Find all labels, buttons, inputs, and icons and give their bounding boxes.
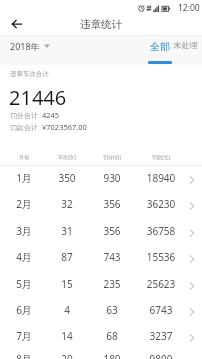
staticText: 罚款合计 [10, 123, 38, 132]
staticText: 4月 [2, 250, 46, 264]
staticText: 20 [45, 356, 89, 359]
staticText: 68 [90, 329, 134, 343]
staticText: 1月 [2, 171, 46, 185]
staticText: 743 [90, 250, 134, 264]
button[interactable]: 3月 [0, 217, 202, 244]
staticText: 4245 [42, 110, 60, 120]
button[interactable]: 1月 [0, 164, 202, 191]
staticText: ¥7023567.00 [42, 122, 87, 132]
staticText: 18940 [139, 171, 183, 185]
staticText: 21446 [9, 84, 67, 111]
staticText: 3月 [2, 224, 46, 238]
button[interactable]: 4月 [0, 243, 202, 270]
staticText: 月份 [2, 154, 46, 160]
button[interactable]: 2018年 [10, 40, 50, 52]
staticText: 4 [45, 303, 89, 317]
button[interactable]: 5月 [0, 270, 202, 297]
button[interactable]: 8月 [0, 352, 202, 359]
staticText: 5月 [2, 277, 46, 291]
staticText: 31 [45, 224, 89, 238]
staticText: 8月 [2, 352, 46, 359]
button[interactable]: 2月 [0, 190, 202, 217]
button[interactable]: 7月 [0, 322, 202, 349]
staticText: 2月 [2, 197, 46, 211]
staticText: 87 [45, 250, 89, 264]
staticText: 违章统计 [80, 18, 122, 31]
staticText: 2018年 [10, 40, 40, 52]
staticText: 36230 [139, 197, 183, 211]
staticText: 罚分合计 [10, 111, 38, 120]
button[interactable]: 全部 [148, 38, 172, 55]
button[interactable]: 8月 [0, 349, 202, 359]
staticText: 32 [45, 197, 89, 211]
staticText: 235 [90, 277, 134, 291]
staticText: 356 [90, 197, 134, 211]
staticText: 9800 [139, 352, 183, 359]
staticText: 未处理 [173, 40, 198, 50]
staticText: 350 [45, 171, 89, 185]
staticText: 25623 [139, 277, 183, 291]
button[interactable]: 6月 [0, 296, 202, 323]
staticText: 180 [90, 352, 134, 359]
staticText: 15536 [139, 250, 183, 264]
staticText: 8月 [2, 356, 46, 359]
button[interactable]: Back [6, 13, 27, 34]
staticText: 15 [45, 277, 89, 291]
staticText: 车次(次) [45, 154, 89, 161]
staticText: 7月 [2, 329, 46, 343]
staticText: 36758 [139, 224, 183, 238]
staticText: 6月 [2, 303, 46, 317]
button[interactable]: 未处理 [171, 38, 200, 52]
staticText: 罚分(分) [90, 154, 134, 161]
staticText: 全部 [150, 40, 170, 53]
staticText: 14 [45, 329, 89, 343]
staticText: 违章车次合计 [10, 70, 49, 78]
staticText: 180 [90, 356, 134, 359]
staticText: 12:00 [178, 2, 200, 14]
staticText: 356 [90, 224, 134, 238]
staticText: 6743 [139, 303, 183, 317]
staticText: 930 [90, 171, 134, 185]
staticText: 63 [90, 303, 134, 317]
staticText: 罚款(元) [139, 154, 183, 161]
staticText: 20 [45, 352, 89, 359]
staticText: 3237 [139, 329, 183, 343]
staticText: 9800 [139, 356, 183, 359]
